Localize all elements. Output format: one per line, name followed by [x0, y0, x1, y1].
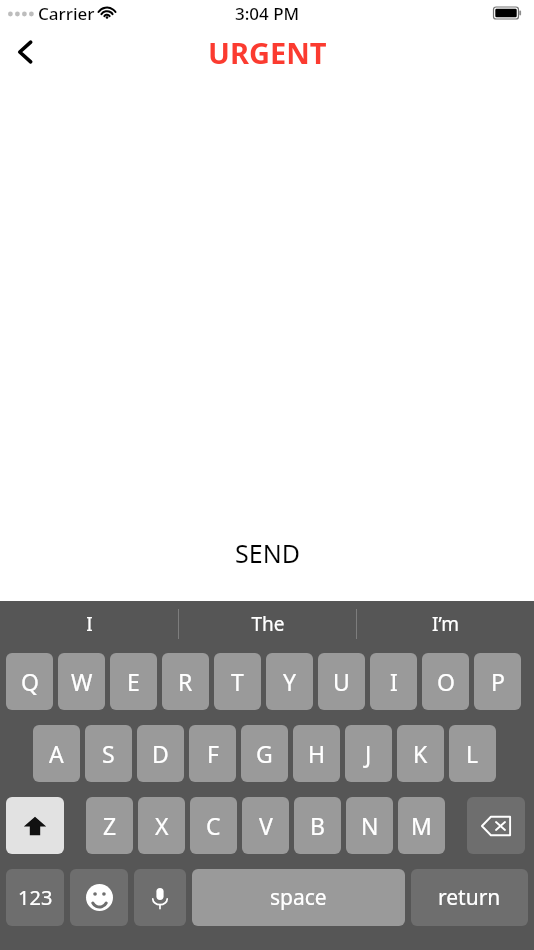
- staticText: F: [207, 738, 219, 769]
- button[interactable]: X: [138, 797, 185, 854]
- button[interactable]: The: [179, 601, 356, 647]
- staticText: Carrier: [38, 2, 95, 25]
- button[interactable]: I: [370, 653, 417, 710]
- button[interactable]: return: [411, 869, 528, 926]
- button[interactable]: I: [0, 601, 178, 647]
- button[interactable]: Z: [86, 797, 133, 854]
- staticText: N: [361, 810, 379, 841]
- staticText: K: [413, 738, 428, 769]
- button[interactable]: space: [192, 869, 405, 926]
- staticText: H: [308, 738, 326, 769]
- staticText: The: [251, 611, 285, 637]
- button[interactable]: K: [397, 725, 444, 782]
- button[interactable]: D: [137, 725, 184, 782]
- staticText: G: [256, 738, 273, 769]
- button[interactable]: A: [33, 725, 80, 782]
- staticText: B: [310, 810, 325, 841]
- staticText: R: [178, 666, 193, 697]
- staticText: space: [270, 883, 327, 912]
- button[interactable]: P: [474, 653, 521, 710]
- staticText: D: [152, 738, 169, 769]
- button[interactable]: E: [110, 653, 157, 710]
- staticText: Z: [103, 810, 117, 841]
- button[interactable]: O: [422, 653, 469, 710]
- button[interactable]: L: [449, 725, 496, 782]
- staticText: E: [127, 666, 140, 697]
- button[interactable]: SEND: [0, 533, 534, 573]
- button[interactable]: Shift: [6, 797, 64, 854]
- staticText: I: [86, 611, 93, 637]
- button[interactable]: Back: [0, 26, 52, 78]
- button[interactable]: U: [318, 653, 365, 710]
- button[interactable]: Dictation: [134, 869, 186, 926]
- staticText: U: [333, 666, 350, 697]
- staticText: SEND: [235, 536, 300, 570]
- button[interactable]: F: [189, 725, 236, 782]
- button[interactable]: J: [345, 725, 392, 782]
- staticText: URGENT: [208, 33, 327, 72]
- staticText: W: [71, 666, 93, 697]
- staticText: M: [411, 810, 432, 841]
- staticText: P: [491, 666, 505, 697]
- staticText: T: [231, 666, 244, 697]
- button[interactable]: Backspace: [467, 797, 525, 854]
- button[interactable]: I’m: [357, 601, 534, 647]
- staticText: Y: [283, 666, 297, 697]
- button[interactable]: Q: [6, 653, 53, 710]
- staticText: C: [206, 810, 221, 841]
- staticText: L: [466, 738, 479, 769]
- button[interactable]: S: [85, 725, 132, 782]
- staticText: X: [155, 810, 169, 841]
- button[interactable]: C: [190, 797, 237, 854]
- button[interactable]: T: [214, 653, 261, 710]
- button[interactable]: N: [346, 797, 393, 854]
- button[interactable]: G: [241, 725, 288, 782]
- button[interactable]: H: [293, 725, 340, 782]
- button[interactable]: W: [58, 653, 105, 710]
- staticText: V: [259, 810, 273, 841]
- staticText: 3:04 PM: [235, 2, 300, 25]
- staticText: J: [365, 738, 372, 769]
- staticText: O: [437, 666, 455, 697]
- button[interactable]: M: [398, 797, 445, 854]
- button[interactable]: Emoji: [70, 869, 128, 926]
- button[interactable]: R: [162, 653, 209, 710]
- button[interactable]: Y: [266, 653, 313, 710]
- staticText: return: [438, 883, 501, 912]
- staticText: I’m: [432, 611, 459, 637]
- button[interactable]: V: [242, 797, 289, 854]
- staticText: 123: [18, 884, 53, 911]
- staticText: S: [102, 738, 115, 769]
- staticText: I: [390, 666, 398, 697]
- staticText: A: [49, 738, 64, 769]
- button[interactable]: 123: [6, 869, 64, 926]
- button[interactable]: B: [294, 797, 341, 854]
- staticText: Q: [21, 666, 39, 697]
